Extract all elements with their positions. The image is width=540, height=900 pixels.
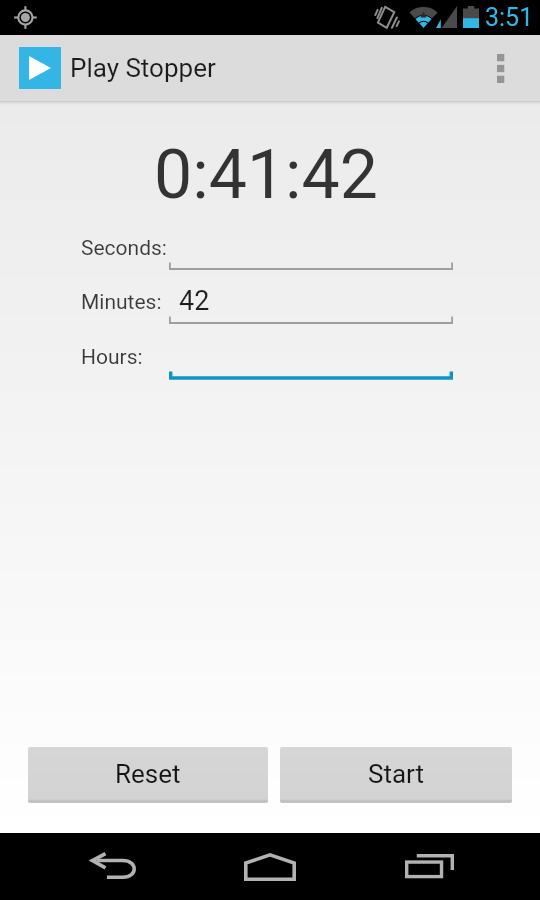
button[interactable] (169, 334, 453, 380)
staticText: Seconds: (81, 236, 167, 261)
button[interactable]: Recent apps (390, 833, 468, 900)
button[interactable] (169, 225, 453, 271)
button[interactable]: 42 (169, 279, 453, 325)
staticText: Start (368, 759, 425, 789)
button[interactable]: Start (280, 747, 512, 803)
staticText: Play Stopper (70, 53, 216, 83)
button[interactable]: Home (230, 833, 310, 900)
button[interactable]: Reset (28, 747, 268, 803)
staticText: 42 (179, 285, 210, 317)
staticText: Minutes: (81, 290, 162, 315)
staticText: 3:51 (485, 3, 534, 32)
button[interactable]: More options (462, 35, 540, 101)
staticText: 0:41:42 (0, 135, 536, 215)
staticText: Hours: (81, 345, 143, 370)
button[interactable]: Back (70, 833, 156, 900)
staticText: Reset (115, 759, 181, 789)
